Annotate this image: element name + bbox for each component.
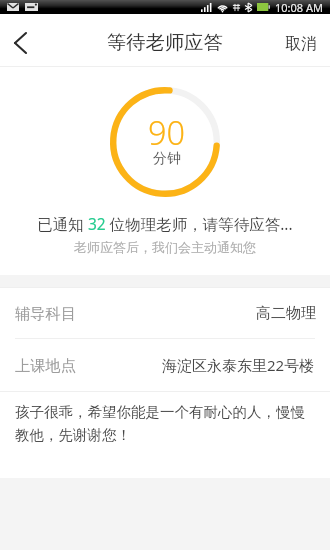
staticText: 老师应答后，我们会主动通知您 xyxy=(74,239,256,255)
staticText: 90 xyxy=(148,110,186,154)
button[interactable]: Back xyxy=(0,16,40,64)
button[interactable]: 辅导科目 xyxy=(0,288,330,338)
staticText: 分钟 xyxy=(153,150,181,168)
staticText: 10:08 AM xyxy=(275,0,323,14)
staticText: 高二物理 xyxy=(256,304,316,323)
staticText: 孩子很乖，希望你能是一个有耐心的人，慢慢教他，先谢谢您！ xyxy=(15,403,318,444)
staticText: 等待老师应答 xyxy=(107,30,223,54)
button[interactable]: 取消 xyxy=(270,14,330,66)
button[interactable]: 上课地点 xyxy=(0,339,330,391)
staticText: 已通知 32 位物理老师，请等待应答... xyxy=(37,213,293,234)
staticText: 上课地点 xyxy=(15,356,77,375)
staticText: 辅导科目 xyxy=(15,304,77,323)
staticText: 取消 xyxy=(285,34,317,54)
staticText: 海淀区永泰东里22号楼 xyxy=(162,355,315,375)
